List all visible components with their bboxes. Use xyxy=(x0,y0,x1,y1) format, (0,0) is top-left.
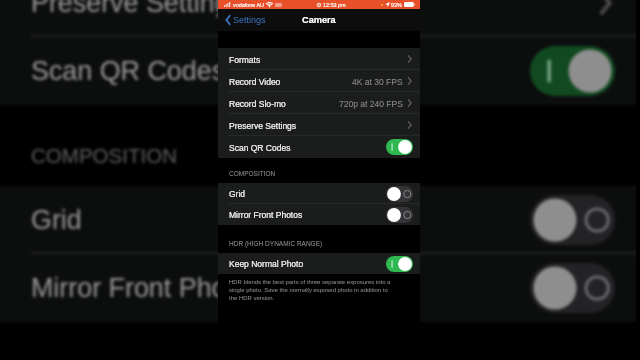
button[interactable]: Settings xyxy=(224,14,266,26)
staticText: COMPOSITION xyxy=(31,144,178,167)
staticText: Camera xyxy=(302,15,336,25)
button[interactable]: Keep Normal Photo xyxy=(218,253,420,274)
button[interactable]: Formats xyxy=(218,48,420,70)
staticText: Scan QR Codes xyxy=(31,56,226,86)
button[interactable]: Switch on xyxy=(530,46,615,96)
staticText: Scan QR Codes xyxy=(229,143,291,152)
staticText: Settings xyxy=(233,15,266,25)
button[interactable]: Record Video xyxy=(218,70,420,92)
staticText: Record Video xyxy=(229,77,281,86)
button[interactable]: Mirror Front Photos xyxy=(0,254,636,322)
staticText: HDR (HIGH DYNAMIC RANGE) xyxy=(229,240,323,247)
staticText: Mirror Front Photos xyxy=(31,273,263,303)
staticText: 720p at 240 FPS xyxy=(339,99,403,108)
staticText: Grid xyxy=(31,205,82,235)
staticText: 4K at 30 FPS xyxy=(352,77,403,86)
staticText: 93% xyxy=(391,2,402,8)
button[interactable]: Switch off xyxy=(530,263,615,313)
button[interactable]: Switch on xyxy=(386,256,413,272)
button[interactable]: Scan QR Codes xyxy=(218,136,420,158)
staticText: Grid xyxy=(229,189,246,198)
staticText: Preserve Settings xyxy=(31,0,243,18)
button[interactable]: Preserve Settings xyxy=(218,114,420,136)
button[interactable]: Switch off xyxy=(530,195,615,245)
staticText: Preserve Settings xyxy=(229,121,297,130)
staticText: Mirror Front Photos xyxy=(229,210,303,219)
staticText: COMPOSITION xyxy=(229,170,276,177)
staticText: Record Slo-mo xyxy=(229,99,286,108)
button[interactable]: Grid xyxy=(218,183,420,204)
staticText: 12:53 pm xyxy=(323,2,346,8)
button[interactable]: Switch on xyxy=(386,139,413,155)
button[interactable]: Mirror Front Photos xyxy=(218,204,420,225)
staticText: Formats xyxy=(229,55,261,64)
staticText: Keep Normal Photo xyxy=(229,259,304,268)
staticText: HDR blends the best parts of three separ… xyxy=(229,279,391,302)
button[interactable]: Record Slo-mo xyxy=(218,92,420,114)
button[interactable]: Scan QR Codes xyxy=(0,37,636,105)
button[interactable]: Preserve Settings xyxy=(0,0,636,37)
staticText: vodafone AU xyxy=(233,2,264,8)
button[interactable]: Switch off xyxy=(386,186,413,202)
button[interactable]: Switch off xyxy=(386,207,413,223)
button[interactable]: Grid xyxy=(0,186,636,254)
